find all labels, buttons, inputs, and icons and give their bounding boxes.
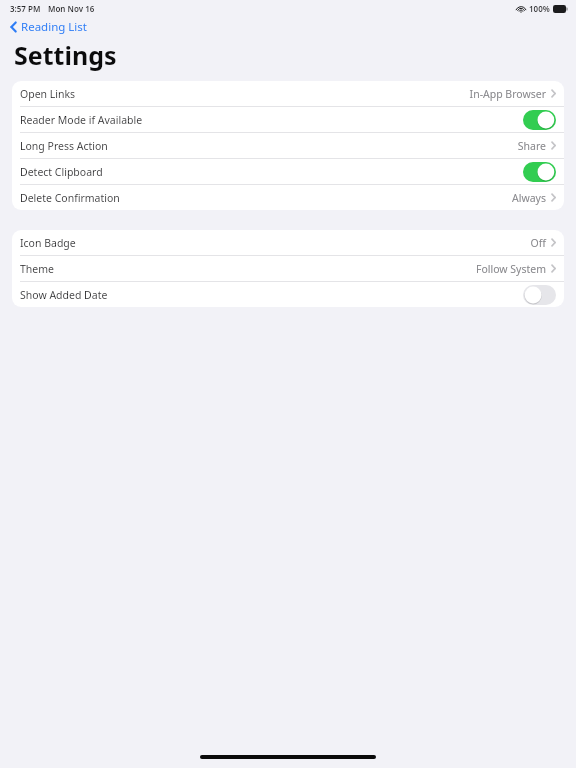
- button[interactable]: Detect Clipboard: [12, 159, 564, 184]
- button[interactable]: Off: [523, 285, 556, 305]
- staticText: Theme: [20, 262, 54, 276]
- button[interactable]: Delete Confirmation: [12, 185, 564, 210]
- staticText: Settings: [14, 38, 117, 72]
- staticText: Reading List: [21, 19, 87, 34]
- staticText: Icon Badge: [20, 236, 76, 250]
- button[interactable]: On: [523, 110, 556, 130]
- staticText: Detect Clipboard: [20, 165, 103, 179]
- button[interactable]: On: [523, 162, 556, 182]
- button[interactable]: Icon Badge: [12, 230, 564, 255]
- staticText: Share: [517, 139, 546, 153]
- button[interactable]: Theme: [12, 256, 564, 281]
- button[interactable]: Long Press Action: [12, 133, 564, 158]
- staticText: Mon Nov 16: [48, 3, 95, 14]
- staticText: In-App Browser: [469, 87, 546, 101]
- button[interactable]: Reader Mode if Available: [12, 107, 564, 132]
- staticText: Reader Mode if Available: [20, 113, 143, 127]
- button[interactable]: Open Links: [12, 81, 564, 106]
- staticText: Show Added Date: [20, 288, 108, 302]
- staticText: Delete Confirmation: [20, 191, 120, 205]
- staticText: 100%: [529, 3, 550, 14]
- button[interactable]: Reading List: [0, 17, 95, 36]
- staticText: Always: [512, 191, 546, 205]
- staticText: Long Press Action: [20, 139, 108, 153]
- staticText: Follow System: [475, 262, 546, 276]
- staticText: 3:57 PM: [10, 3, 41, 14]
- button[interactable]: Show Added Date: [12, 282, 564, 307]
- staticText: Off: [530, 236, 546, 250]
- staticText: Open Links: [20, 87, 76, 101]
